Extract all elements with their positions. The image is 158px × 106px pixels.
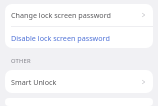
- other: Open Smart Unlock: [141, 79, 147, 85]
- other: Open Change lock screen password: [141, 12, 147, 18]
- staticText: OTHER: [11, 57, 31, 65]
- staticText: Disable lock screen password: [11, 33, 110, 43]
- button[interactable]: Smart Unlock: [5, 70, 153, 93]
- button[interactable]: Disable lock screen password: [5, 27, 153, 48]
- button[interactable]: Change lock screen password: [5, 4, 153, 26]
- staticText: Change lock screen password: [11, 10, 111, 20]
- staticText: Smart Unlock: [11, 77, 57, 87]
